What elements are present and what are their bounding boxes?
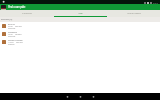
button[interactable]: Nearby Region — [107, 10, 160, 16]
staticText: Tent sites — [16, 41, 23, 43]
staticText: Results (3) — [1, 18, 13, 21]
staticText: 4.2 km — [8, 25, 13, 27]
staticText: Find a campsite — [8, 5, 26, 9]
staticText: 11.5 km — [8, 41, 14, 43]
staticText: Caravans — [15, 33, 22, 35]
staticText: Campsites — [22, 12, 32, 15]
button[interactable]: Back — [61, 93, 74, 100]
staticText: Tent sites — [15, 25, 22, 27]
button[interactable]: Campsites — [0, 10, 54, 16]
staticText: Birch Hill — [8, 23, 15, 25]
button[interactable]: Map — [54, 10, 107, 16]
staticText: Oakvale & Glenway — [8, 39, 23, 41]
staticText: Open now — [8, 27, 16, 29]
button[interactable]: Oakvale & Glenway — [0, 38, 160, 46]
staticText: Willowmere — [8, 31, 18, 33]
button[interactable]: Recent apps — [87, 93, 100, 100]
button[interactable]: Home — [74, 93, 87, 100]
staticText: Open now — [8, 35, 16, 37]
staticText: Nearby Region — [127, 12, 141, 15]
staticText: Seasonal — [8, 43, 15, 45]
staticText: Map — [78, 12, 83, 15]
staticText: 7.8 km — [8, 33, 13, 35]
button[interactable]: Willowmere — [0, 30, 160, 38]
staticText: 9:22 — [153, 1, 158, 4]
button[interactable]: App icon — [1, 5, 6, 10]
button[interactable]: Birch Hill — [0, 22, 160, 30]
